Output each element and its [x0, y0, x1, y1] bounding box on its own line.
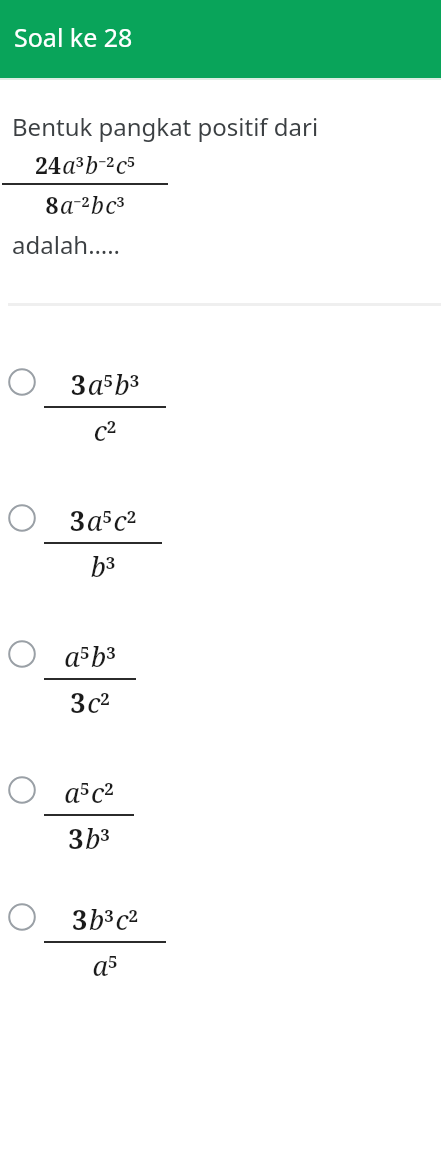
button[interactable]: Pilihan 3 [0, 626, 441, 733]
staticText: a5 b3 [44, 638, 136, 675]
staticText: a5 c2 [44, 774, 134, 811]
staticText: 3 c2 [44, 684, 136, 721]
other: Pilihan 3 [8, 640, 36, 668]
staticText: c2 [44, 412, 166, 449]
staticText: b3 [44, 548, 162, 585]
staticText: 3 a5 c2 [44, 502, 162, 539]
button[interactable]: Soal ke 28 [0, 0, 441, 78]
staticText: a5 [44, 947, 166, 984]
staticText: 24 a3 b−2 c5 [2, 149, 168, 180]
staticText: 3 b3 c2 [44, 901, 166, 938]
other: Pilihan 4 [8, 776, 36, 804]
button[interactable]: Pilihan 1 [0, 354, 441, 461]
staticText: Soal ke 28 [14, 20, 133, 54]
button[interactable]: Pilihan 2 [0, 490, 441, 597]
staticText: adalah….. [12, 228, 121, 261]
staticText: 3 a5 b3 [44, 366, 166, 403]
staticText: 3 b3 [44, 820, 134, 857]
staticText: 8 a−2 b c3 [2, 189, 168, 220]
button[interactable]: Pilihan 5 [0, 889, 441, 996]
other: Pilihan 1 [8, 368, 36, 396]
other: Pilihan 2 [8, 504, 36, 532]
other: Pilihan 5 [8, 903, 36, 931]
button[interactable]: Pilihan 4 [0, 762, 441, 869]
staticText: Bentuk pangkat positif dari [12, 110, 319, 143]
